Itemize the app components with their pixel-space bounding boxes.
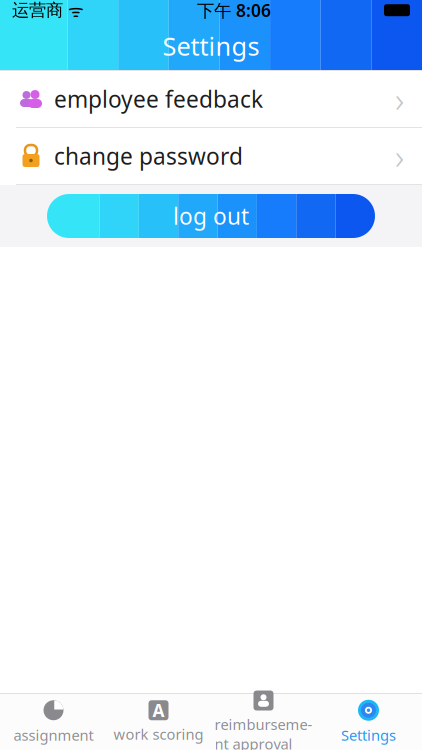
staticText: 下午 8:06 <box>197 0 271 22</box>
staticText: ᯤ <box>63 0 84 22</box>
staticText: reimbursement approval <box>214 714 312 750</box>
button[interactable]: log out <box>47 194 375 238</box>
staticText: assignment <box>13 725 93 745</box>
button[interactable]: A <box>106 698 211 746</box>
button[interactable]: reimbursement approval <box>211 698 316 746</box>
button[interactable]: change password <box>0 128 422 185</box>
staticText: Settings <box>341 725 396 745</box>
button[interactable]: employee feedback <box>0 71 422 128</box>
button[interactable]: Settings <box>316 698 421 746</box>
staticText: 运营商 <box>12 0 63 21</box>
staticText: › <box>395 133 404 179</box>
staticText: employee feedback <box>54 84 263 114</box>
staticText: change password <box>54 141 243 171</box>
staticText: A <box>152 699 164 722</box>
button[interactable]: assignment <box>1 698 106 746</box>
staticText: log out <box>173 201 249 231</box>
staticText: work scoring <box>113 724 203 744</box>
staticText: Settings <box>162 29 259 63</box>
staticText: › <box>395 76 404 122</box>
